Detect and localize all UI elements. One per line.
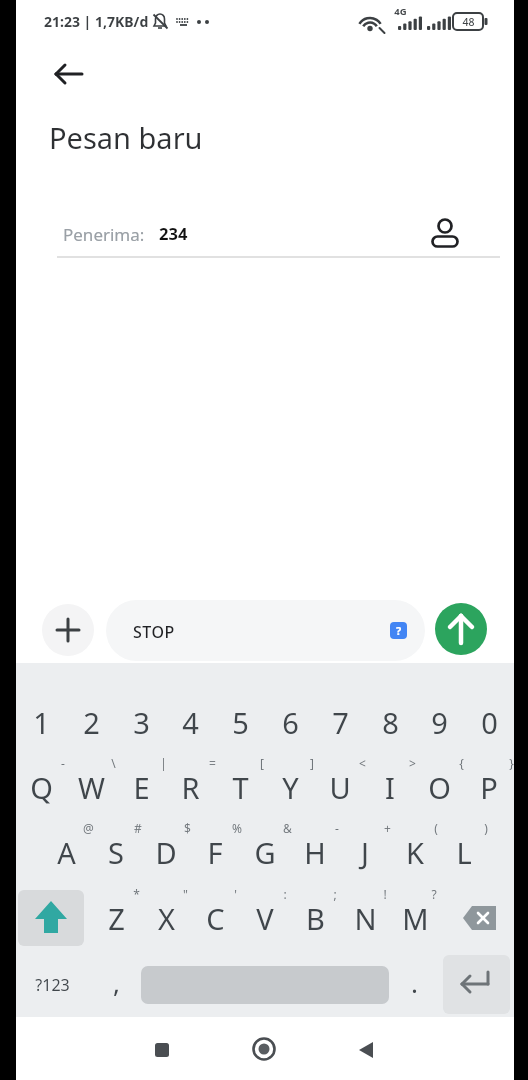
staticText: . xyxy=(411,965,418,1000)
button[interactable]: 2 xyxy=(66,697,116,747)
button[interactable]: C xyxy=(190,893,240,943)
staticText: ! xyxy=(383,886,387,902)
staticText: | xyxy=(160,755,167,771)
staticText: B xyxy=(306,899,325,938)
staticText: , xyxy=(113,965,120,1000)
staticText: Q xyxy=(30,768,53,807)
staticText: \ xyxy=(111,755,116,771)
staticText: G xyxy=(254,833,276,872)
staticText: } xyxy=(509,755,514,771)
staticText: H xyxy=(304,833,326,872)
staticText: " xyxy=(183,886,188,902)
staticText: 234 xyxy=(159,222,188,244)
button[interactable]: T xyxy=(215,762,265,812)
staticText: W xyxy=(78,768,105,807)
staticText: - xyxy=(61,755,65,771)
staticText: % xyxy=(232,820,242,836)
staticText: J xyxy=(361,833,369,872)
button[interactable]: , xyxy=(101,960,131,1004)
button[interactable]: Z xyxy=(91,893,141,943)
button[interactable] xyxy=(346,1030,386,1070)
button[interactable]: 4 xyxy=(165,697,215,747)
button[interactable]: J xyxy=(340,827,390,877)
button[interactable] xyxy=(48,56,84,92)
button[interactable] xyxy=(428,212,464,248)
staticText: < xyxy=(359,755,366,771)
staticText: N xyxy=(354,899,377,938)
button[interactable]: S xyxy=(91,827,141,877)
button[interactable]: STOP xyxy=(106,600,425,661)
button[interactable]: E xyxy=(116,762,166,812)
button[interactable]: H xyxy=(290,827,340,877)
button[interactable] xyxy=(18,890,84,946)
staticText: 9 xyxy=(431,703,448,742)
staticText: ) xyxy=(484,820,488,836)
staticText: ; xyxy=(333,886,337,902)
staticText: ? xyxy=(431,886,437,902)
button[interactable]: Q xyxy=(16,762,66,812)
button[interactable]: M xyxy=(390,893,440,943)
staticText: A xyxy=(57,833,76,872)
staticText: E xyxy=(133,768,150,807)
staticText: Pesan baru xyxy=(49,118,203,157)
staticText: F xyxy=(207,833,223,872)
staticText: 5 xyxy=(232,703,249,742)
button[interactable]: L xyxy=(439,827,489,877)
button[interactable] xyxy=(244,1029,284,1069)
button[interactable] xyxy=(443,955,510,1014)
staticText: - xyxy=(335,820,339,836)
staticText: S xyxy=(108,833,124,872)
staticText: 1 xyxy=(33,703,50,742)
staticText: ' xyxy=(234,886,237,902)
staticText: 2 xyxy=(83,703,100,742)
button[interactable] xyxy=(42,604,94,656)
button[interactable]: F xyxy=(190,827,240,877)
button[interactable]: Y xyxy=(265,762,315,812)
button[interactable]: V xyxy=(240,893,290,943)
staticText: K xyxy=(406,833,424,872)
staticText: STOP xyxy=(133,621,175,643)
button[interactable]: B xyxy=(290,893,340,943)
button[interactable]: 1 xyxy=(16,697,66,747)
button[interactable]: 3 xyxy=(116,697,166,747)
button[interactable]: I xyxy=(365,762,415,812)
button[interactable]: 0 xyxy=(464,697,514,747)
button[interactable]: W xyxy=(66,762,116,812)
button[interactable]: P xyxy=(464,762,514,812)
button[interactable]: G xyxy=(240,827,290,877)
button[interactable]: 8 xyxy=(365,697,415,747)
button[interactable]: O xyxy=(414,762,464,812)
button[interactable]: ?123 xyxy=(17,965,87,1005)
staticText: P xyxy=(480,768,498,807)
staticText: ( xyxy=(434,820,438,836)
button[interactable]: D xyxy=(141,827,191,877)
button[interactable]: X xyxy=(141,893,191,943)
button[interactable]: 9 xyxy=(414,697,464,747)
button[interactable]: 7 xyxy=(315,697,365,747)
button[interactable]: K xyxy=(390,827,440,877)
staticText: U xyxy=(329,768,351,807)
button[interactable] xyxy=(142,1030,182,1070)
button[interactable]: A xyxy=(41,827,91,877)
staticText: C xyxy=(206,899,225,938)
button[interactable]: . xyxy=(399,960,429,1004)
staticText: M xyxy=(402,899,429,938)
staticText: $ xyxy=(184,820,191,836)
staticText: L xyxy=(456,833,472,872)
button[interactable] xyxy=(435,603,487,655)
staticText: = xyxy=(209,755,216,771)
staticText: @ xyxy=(83,820,94,836)
staticText: 0 xyxy=(481,703,498,742)
staticText: 4G xyxy=(394,5,407,18)
button[interactable]: U xyxy=(315,762,365,812)
button[interactable]: N xyxy=(340,893,390,943)
staticText: Z xyxy=(108,899,125,938)
button[interactable]: 6 xyxy=(265,697,315,747)
button[interactable] xyxy=(460,902,500,934)
staticText: 4 xyxy=(182,703,199,742)
button[interactable]: 5 xyxy=(215,697,265,747)
staticText: ?123 xyxy=(35,974,70,996)
button[interactable]: R xyxy=(165,762,215,812)
staticText: R xyxy=(181,768,200,807)
